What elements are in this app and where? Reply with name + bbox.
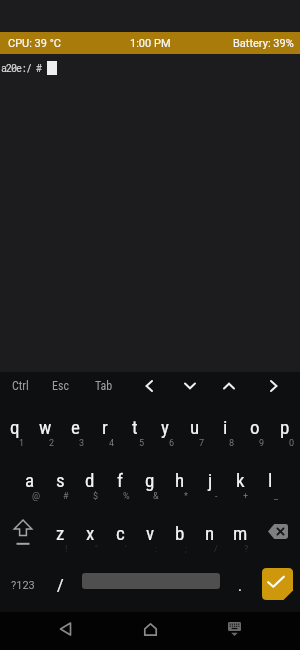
button[interactable] — [262, 568, 293, 600]
staticText: 0 — [289, 438, 295, 449]
staticText: z — [56, 522, 65, 544]
button[interactable]: ?123 — [0, 559, 45, 612]
staticText: i — [223, 416, 228, 438]
staticText: 3 — [79, 438, 85, 449]
staticText: ?123 — [11, 579, 35, 592]
staticText: g — [145, 469, 155, 491]
button[interactable]: Ctrl — [0, 372, 40, 400]
button[interactable]: q — [0, 400, 30, 453]
staticText: j — [208, 469, 213, 491]
button[interactable] — [255, 559, 300, 612]
staticText: c — [116, 522, 125, 544]
staticText: / — [57, 576, 64, 595]
button[interactable] — [248, 372, 300, 400]
button[interactable]: . — [225, 559, 255, 612]
button[interactable] — [45, 612, 85, 650]
button[interactable]: Esc — [40, 372, 80, 400]
staticText: s — [56, 469, 65, 491]
staticText: f — [117, 469, 124, 491]
button[interactable]: l — [255, 453, 285, 506]
staticText: Battery: 39% — [233, 37, 294, 50]
staticText: p — [280, 416, 290, 438]
staticText: Ctrl — [12, 379, 29, 393]
staticText: Tab — [95, 379, 113, 393]
button[interactable] — [170, 372, 210, 400]
button[interactable]: i — [210, 400, 240, 453]
button[interactable]: f — [105, 453, 135, 506]
button[interactable]: Tab — [80, 372, 127, 400]
staticText: # — [63, 491, 69, 502]
button[interactable]: y — [150, 400, 180, 453]
button[interactable]: u — [180, 400, 210, 453]
button[interactable] — [255, 506, 300, 559]
staticText: CPU: 39 °C — [8, 37, 61, 50]
staticText: q — [10, 416, 20, 438]
button[interactable]: b — [165, 506, 195, 559]
staticText: n — [205, 522, 215, 544]
staticText: r — [102, 416, 108, 438]
staticText: " — [95, 544, 98, 555]
staticText: 5 — [139, 438, 145, 449]
staticText: % — [123, 491, 130, 502]
staticText: y — [161, 416, 169, 438]
staticText: + — [243, 491, 249, 502]
button[interactable]: m — [225, 506, 255, 559]
button[interactable]: c — [105, 506, 135, 559]
staticText: b — [175, 522, 185, 544]
staticText: : — [155, 544, 158, 555]
staticText: ? — [244, 544, 249, 555]
staticText: 4 — [109, 438, 115, 449]
staticText: 9 — [259, 438, 265, 449]
staticText: / — [214, 544, 218, 555]
button[interactable]: / — [45, 559, 75, 612]
button[interactable]: k — [225, 453, 255, 506]
staticText: a20e:/ # — [1, 62, 42, 75]
staticText: & — [153, 491, 159, 502]
staticText: t — [132, 416, 138, 438]
staticText: w — [39, 416, 52, 438]
button[interactable]: s — [45, 453, 75, 506]
staticText: ; — [185, 544, 187, 555]
button[interactable]: e — [60, 400, 90, 453]
staticText: - — [215, 491, 218, 502]
button[interactable] — [130, 612, 170, 650]
button[interactable]: v — [135, 506, 165, 559]
staticText: u — [190, 416, 200, 438]
staticText: x — [86, 522, 95, 544]
staticText: m — [233, 522, 248, 544]
button[interactable]: j — [195, 453, 225, 506]
button[interactable]: w — [30, 400, 60, 453]
button[interactable] — [215, 612, 255, 650]
button[interactable] — [127, 372, 170, 400]
button[interactable]: CPU: 39 °C — [0, 32, 300, 54]
button[interactable] — [210, 372, 248, 400]
staticText: o — [250, 416, 260, 438]
button[interactable]: o — [240, 400, 270, 453]
button[interactable]: x — [75, 506, 105, 559]
staticText: * — [184, 491, 188, 502]
staticText: Esc — [52, 379, 69, 393]
button[interactable]: d — [75, 453, 105, 506]
staticText: 7 — [199, 438, 205, 449]
button[interactable]: p — [270, 400, 300, 453]
staticText: ' — [125, 544, 127, 555]
staticText: l — [268, 469, 273, 491]
button[interactable]: h — [165, 453, 195, 506]
staticText: 1 — [19, 438, 25, 449]
staticText: e — [71, 416, 80, 438]
staticText: 8 — [229, 438, 235, 449]
button[interactable]: g — [135, 453, 165, 506]
button[interactable] — [75, 559, 225, 612]
staticText: k — [236, 469, 245, 491]
button[interactable]: t — [120, 400, 150, 453]
button[interactable]: r — [90, 400, 120, 453]
button[interactable]: z — [45, 506, 75, 559]
button[interactable] — [0, 506, 45, 559]
button[interactable]: a — [15, 453, 45, 506]
staticText: _ — [274, 491, 279, 502]
staticText: @ — [32, 491, 41, 502]
button[interactable]: n — [195, 506, 225, 559]
staticText: h — [175, 469, 185, 491]
staticText: 6 — [169, 438, 175, 449]
staticText: d — [85, 469, 95, 491]
